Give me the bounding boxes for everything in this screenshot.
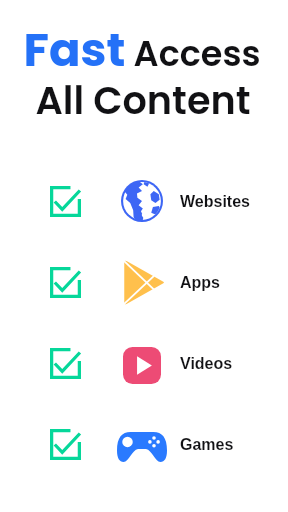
button[interactable]: Games bbox=[0, 404, 288, 485]
staticText: Websites bbox=[180, 193, 250, 211]
staticText: Videos bbox=[180, 355, 233, 373]
button[interactable]: Videos bbox=[0, 323, 288, 404]
staticText: All Content bbox=[0, 74, 287, 127]
staticText: Games bbox=[180, 436, 234, 454]
button[interactable]: Websites bbox=[0, 161, 288, 242]
other: Websites bbox=[121, 180, 163, 222]
button[interactable]: Apps bbox=[0, 242, 288, 323]
other: Apps bbox=[123, 260, 165, 305]
other: Games bbox=[117, 432, 167, 462]
staticText: Fast Access bbox=[0, 17, 286, 82]
other: Videos bbox=[123, 347, 161, 384]
staticText: Apps bbox=[180, 274, 220, 292]
